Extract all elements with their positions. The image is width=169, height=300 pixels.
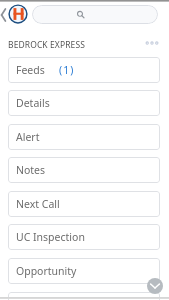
staticText: Notes: [16, 163, 46, 177]
button[interactable]: Opportunity: [8, 258, 160, 284]
staticText: Feeds: [16, 63, 45, 77]
button[interactable]: Feeds: [8, 57, 160, 83]
staticText: Alert: [16, 130, 40, 144]
button[interactable]: Scroll down: [147, 278, 163, 294]
staticText: Opportunity: [16, 264, 77, 278]
staticText: UC Inspection: [16, 230, 85, 244]
button[interactable]: Back: [0, 5, 9, 24]
staticText: Next Call: [16, 197, 60, 211]
button[interactable]: More options: [142, 35, 164, 51]
button[interactable]: Alert: [8, 124, 160, 150]
staticText: BEDROCK EXPRESS: [8, 39, 85, 51]
staticText: Details: [16, 96, 50, 110]
button[interactable]: Home: [8, 4, 28, 24]
button[interactable]: Search: [32, 5, 158, 24]
button[interactable]: [8, 292, 160, 300]
staticText: (1): [59, 63, 75, 77]
button[interactable]: Next Call: [8, 191, 160, 217]
button[interactable]: Notes: [8, 157, 160, 183]
button[interactable]: UC Inspection: [8, 224, 160, 250]
button[interactable]: Details: [8, 90, 160, 116]
